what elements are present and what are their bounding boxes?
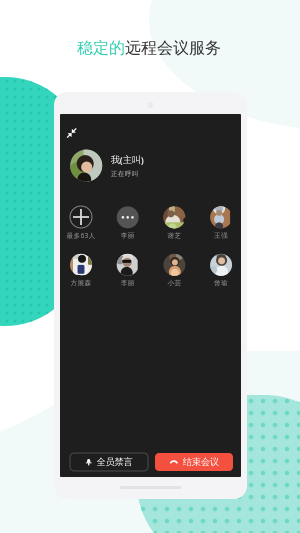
- staticText: 李丽: [121, 279, 135, 287]
- button[interactable]: 全员禁言: [70, 453, 148, 471]
- staticText: 王强: [214, 231, 228, 239]
- staticText: 远程会议服务: [125, 38, 221, 58]
- button[interactable]: 谢芝: [154, 206, 194, 239]
- staticText: 谢芝: [167, 231, 181, 239]
- staticText: 李丽: [121, 231, 135, 239]
- staticText: 方展森: [70, 279, 91, 287]
- staticText: 稳定的: [77, 38, 125, 58]
- staticText: 结束会议: [183, 456, 219, 468]
- button[interactable]: Minimize: [64, 125, 80, 141]
- staticText: 正在呼叫: [111, 170, 139, 178]
- button[interactable]: 方展森: [61, 254, 101, 287]
- button[interactable]: 李丽: [108, 206, 148, 239]
- button[interactable]: 李丽: [108, 254, 148, 287]
- staticText: 最多63人: [66, 231, 95, 240]
- staticText: 曾瑜: [214, 279, 228, 287]
- staticText: 我(主叫): [111, 153, 144, 166]
- button[interactable]: 结束会议: [155, 453, 233, 471]
- staticText: 全员禁言: [96, 456, 132, 468]
- button[interactable]: 曾瑜: [201, 254, 241, 287]
- staticText: 小芸: [167, 279, 181, 287]
- button[interactable]: 最多63人: [61, 206, 101, 240]
- button[interactable]: 小芸: [154, 254, 194, 287]
- button[interactable]: 王强: [201, 206, 241, 239]
